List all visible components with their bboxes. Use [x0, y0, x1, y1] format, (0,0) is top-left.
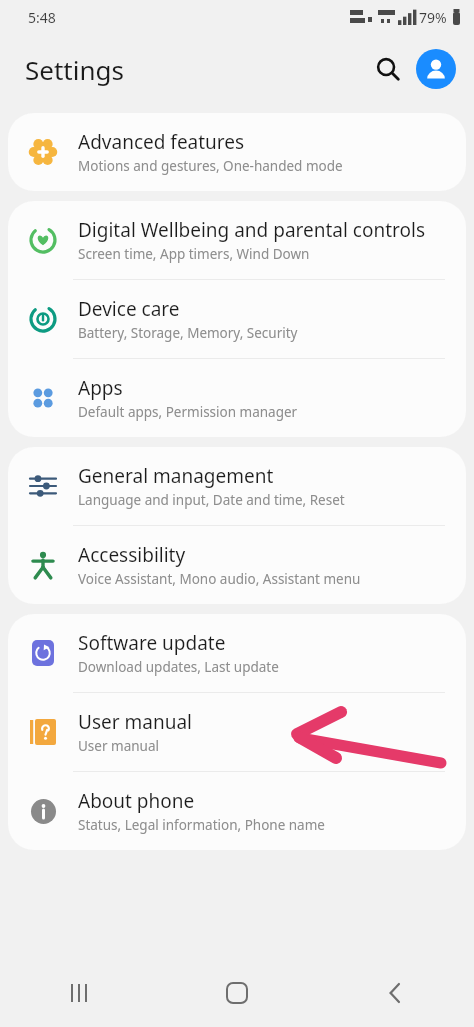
button[interactable]: About phone: [8, 772, 466, 850]
button[interactable]: Apps: [8, 359, 466, 437]
staticText: Digital Wellbeing and parental controls: [78, 217, 426, 243]
button[interactable]: Device care: [8, 280, 466, 358]
staticText: About phone: [78, 788, 195, 814]
button[interactable]: Recents: [0, 959, 158, 1027]
staticText: Accessibility: [78, 542, 186, 568]
button[interactable]: User manual: [8, 693, 466, 771]
staticText: General management: [78, 463, 274, 489]
button[interactable]: Search: [366, 47, 410, 91]
button[interactable]: Advanced features: [8, 113, 466, 191]
staticText: Settings: [25, 52, 124, 87]
staticText: Screen time, App timers, Wind Down: [78, 245, 310, 263]
staticText: Language and input, Date and time, Reset: [78, 491, 345, 509]
staticText: Battery, Storage, Memory, Security: [78, 324, 298, 342]
staticText: Download updates, Last update: [78, 658, 279, 676]
button[interactable]: Back: [316, 959, 474, 1027]
button[interactable]: Account: [416, 49, 456, 89]
staticText: Device care: [78, 296, 180, 322]
staticText: Default apps, Permission manager: [78, 403, 298, 421]
staticText: Advanced features: [78, 129, 245, 155]
button[interactable]: Digital Wellbeing and parental controls: [8, 201, 466, 279]
staticText: Voice Assistant, Mono audio, Assistant m…: [78, 570, 361, 588]
button[interactable]: General management: [8, 447, 466, 525]
button[interactable]: Accessibility: [8, 526, 466, 604]
staticText: Apps: [78, 375, 123, 401]
staticText: Software update: [78, 630, 226, 656]
button[interactable]: Home: [158, 959, 316, 1027]
button[interactable]: Software update: [8, 614, 466, 692]
staticText: User manual: [78, 737, 159, 755]
staticText: Status, Legal information, Phone name: [78, 816, 325, 834]
staticText: 79%: [419, 8, 447, 27]
staticText: User manual: [78, 709, 192, 735]
staticText: Motions and gestures, One-handed mode: [78, 157, 343, 175]
staticText: 5:48: [28, 8, 56, 27]
